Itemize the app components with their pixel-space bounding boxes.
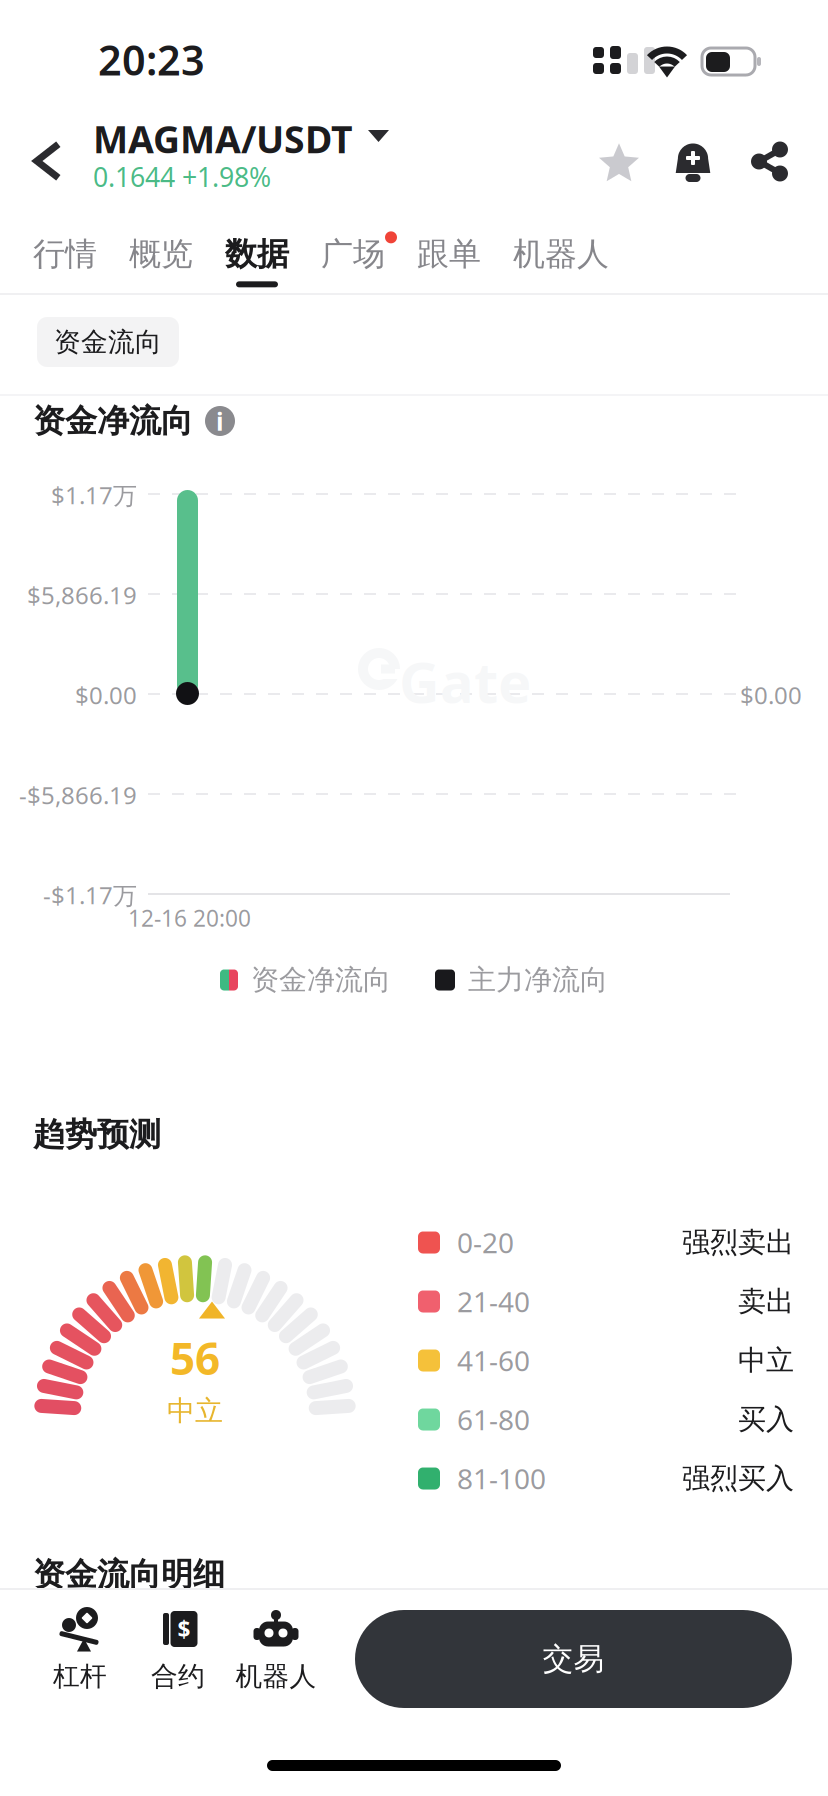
staticText: MAGMA/USDT (93, 114, 353, 164)
staticText: $5,866.19 (27, 579, 137, 611)
staticText: 主力净流向 (468, 963, 608, 997)
button[interactable]: Back (24, 140, 68, 182)
staticText: 56 (170, 1329, 220, 1387)
staticText: 行情 (33, 234, 97, 274)
staticText: $0.00 (75, 679, 137, 711)
staticText: 强烈买入 (682, 1461, 794, 1496)
button[interactable]: 跟单 (401, 234, 497, 274)
staticText: $ (177, 1614, 190, 1644)
staticText: Gate (399, 644, 531, 718)
staticText: -$5,866.19 (19, 779, 137, 811)
button[interactable]: Share (752, 143, 788, 180)
staticText: 中立 (738, 1343, 794, 1378)
staticText: 0-20 (457, 1224, 514, 1261)
staticText: 61-80 (457, 1401, 530, 1438)
staticText: 广场 (321, 234, 385, 274)
staticText: -$1.17万 (43, 879, 137, 911)
button[interactable]: Price alert (675, 141, 711, 181)
staticText: 资金流向 (54, 326, 162, 358)
button[interactable]: 资金流向 (37, 317, 179, 367)
button[interactable]: 概览 (113, 234, 209, 274)
staticText: 合约 (151, 1660, 205, 1693)
staticText: 买入 (738, 1402, 794, 1437)
staticText: i (216, 404, 224, 438)
button[interactable]: Switch pair (368, 130, 389, 142)
button[interactable]: 行情 (17, 234, 113, 274)
button[interactable]: 机器人 (227, 1605, 325, 1693)
button[interactable]: 数据 (209, 234, 305, 274)
button[interactable]: 广场 (305, 234, 401, 274)
staticText: 81-100 (457, 1460, 546, 1497)
staticText: 数据 (225, 234, 289, 274)
button[interactable]: Favorite (598, 142, 640, 184)
button[interactable]: 交易 (355, 1610, 792, 1708)
staticText: 概览 (129, 234, 193, 274)
button[interactable]: 杠杆 (31, 1605, 129, 1693)
button[interactable]: $ (129, 1605, 227, 1693)
staticText: 12-16 20:00 (128, 903, 251, 933)
staticText: 趋势预测 (33, 1115, 161, 1154)
staticText: 20:23 (98, 32, 205, 87)
staticText: $1.17万 (51, 479, 137, 511)
staticText: 41-60 (457, 1342, 530, 1379)
staticText: 卖出 (738, 1284, 794, 1319)
staticText: 强烈卖出 (682, 1225, 794, 1260)
staticText: 资金净流向 (251, 963, 391, 997)
staticText: $0.00 (740, 679, 802, 711)
button[interactable]: Info (205, 404, 235, 438)
staticText: 跟单 (417, 234, 481, 274)
button[interactable]: 机器人 (497, 234, 625, 274)
staticText: 0.1644 +1.98% (93, 159, 271, 194)
staticText: 资金流向明细 (33, 1555, 225, 1594)
staticText: 机器人 (513, 234, 609, 274)
staticText: 交易 (542, 1640, 604, 1678)
staticText: 21-40 (457, 1283, 530, 1320)
staticText: 机器人 (235, 1660, 316, 1693)
staticText: 杠杆 (53, 1660, 107, 1693)
staticText: 资金净流向 (33, 401, 193, 441)
staticText: 中立 (167, 1394, 223, 1428)
